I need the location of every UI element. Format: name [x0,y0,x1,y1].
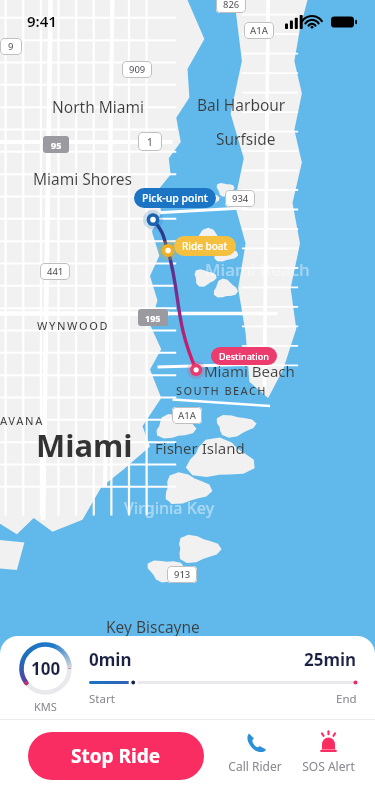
staticText: 9:41 [27,11,57,31]
button[interactable]: Call Rider [224,728,286,776]
staticText: Key Biscayne [106,616,200,637]
staticText: 100 [31,657,61,680]
button[interactable] [89,678,357,687]
staticText: 0min [89,648,132,671]
staticText: SOS Alert [302,758,355,774]
staticText: 909 [129,63,146,76]
staticText: 195 [145,312,161,324]
staticText: 95 [51,139,62,151]
button[interactable]: Ride boat [174,236,236,256]
staticText: Miami Beach [205,258,310,281]
staticText: 9 [8,40,14,53]
staticText: Destination [219,350,269,362]
staticText: WYNWOOD [37,318,110,333]
staticText: North Miami [52,96,145,117]
staticText: Start [89,691,115,707]
staticText: End [336,691,357,707]
staticText: Bal Harbour [197,94,286,115]
staticText: 1 [147,135,153,149]
staticText: Fisher Island [155,438,245,458]
button[interactable]: Destination [211,347,277,365]
button[interactable]: Pick-up point [134,188,216,208]
button[interactable]: Stop Ride [28,732,204,780]
staticText: KMS [34,699,57,714]
staticText: Surfside [216,128,276,149]
staticText: Virginia Key [124,497,215,519]
staticText: 441 [47,265,64,278]
button[interactable]: SOS Alert [298,728,359,776]
staticText: Miami [36,424,133,466]
staticText: 826 [223,0,240,11]
staticText: 25min [304,648,357,671]
staticText: SOUTH BEACH [176,383,267,398]
staticText: A1A [250,24,268,37]
staticText: Miami Shores [33,168,132,189]
staticText: 913 [174,568,191,581]
staticText: Ride boat [182,239,228,253]
staticText: Call Rider [228,758,282,774]
staticText: A1A [178,409,196,422]
staticText: 934 [232,192,249,205]
staticText: Stop Ride [71,743,161,769]
staticText: Miami Beach [204,361,295,381]
staticText: AVANA [0,413,45,428]
staticText: Pick-up point [142,191,208,205]
